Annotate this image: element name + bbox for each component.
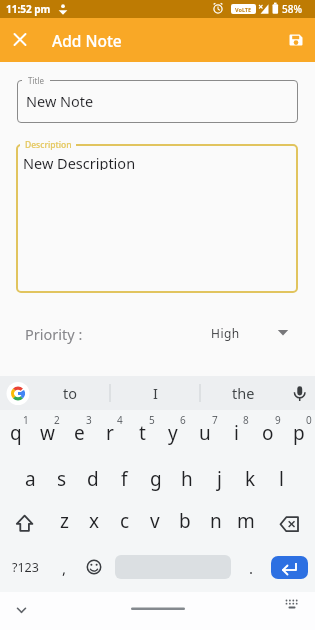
button[interactable]: n [201, 508, 231, 534]
button[interactable]: m [231, 508, 261, 534]
staticText: g [150, 466, 162, 492]
staticText: n [210, 508, 222, 534]
staticText: v [150, 508, 160, 534]
button[interactable]: t [127, 420, 157, 446]
button[interactable] [10, 510, 40, 538]
button[interactable]: u [190, 420, 220, 446]
staticText: 2 [54, 413, 60, 426]
button[interactable]: , [52, 555, 76, 581]
button[interactable]: s [47, 466, 77, 492]
staticText: VoLTE [235, 6, 252, 13]
button[interactable]: I [131, 380, 179, 406]
staticText: 58% [282, 2, 302, 16]
button[interactable]: g [141, 466, 171, 492]
staticText: o [262, 420, 274, 446]
button[interactable]: k [235, 466, 265, 492]
button[interactable]: c [110, 508, 140, 534]
button[interactable]: ?123 [10, 554, 40, 580]
button[interactable]: l [266, 466, 296, 492]
button[interactable]: f [109, 466, 139, 492]
staticText: , [62, 558, 67, 578]
staticText: 9 [275, 413, 281, 426]
staticText: q [10, 420, 22, 446]
staticText: New Note [26, 91, 94, 108]
button[interactable] [271, 556, 308, 579]
button[interactable]: y [158, 420, 188, 446]
staticText: p [293, 420, 305, 446]
staticText: Description [25, 139, 72, 150]
button[interactable]: e [64, 420, 94, 446]
button[interactable]: p [284, 420, 314, 446]
button[interactable]: a [15, 466, 45, 492]
button[interactable]: b [170, 508, 200, 534]
staticText: to [63, 383, 78, 403]
button[interactable]: q [1, 420, 31, 446]
staticText: d [87, 466, 99, 492]
button[interactable]: d [78, 466, 108, 492]
staticText: s [57, 466, 67, 492]
button[interactable]: the [219, 380, 267, 406]
button[interactable] [276, 510, 306, 538]
staticText: u [199, 420, 211, 446]
staticText: High [211, 325, 240, 341]
button[interactable] [16, 144, 298, 293]
staticText: x [89, 508, 100, 534]
staticText: ?123 [12, 559, 39, 576]
staticText: a [25, 466, 36, 492]
button[interactable] [280, 24, 312, 56]
staticText: 8 [243, 413, 249, 426]
button[interactable] [4, 24, 36, 56]
staticText: New Description [23, 153, 136, 170]
staticText: r [106, 420, 114, 446]
button[interactable] [17, 80, 298, 123]
staticText: j [217, 466, 222, 492]
staticText: m [237, 508, 255, 534]
button[interactable]: to [46, 380, 94, 406]
staticText: Title [28, 75, 44, 86]
staticText: 6 [180, 413, 186, 426]
staticText: 0 [306, 413, 312, 426]
staticText: b [179, 508, 191, 534]
button[interactable]: j [204, 466, 234, 492]
button[interactable]: z [49, 508, 79, 534]
staticText: h [181, 466, 193, 492]
staticText: l [279, 466, 284, 492]
staticText: 5 [149, 413, 155, 426]
staticText: e [74, 420, 85, 446]
staticText: the [232, 383, 255, 403]
staticText: . [249, 558, 254, 578]
button[interactable]: w [32, 420, 62, 446]
staticText: c [120, 508, 130, 534]
staticText: f [121, 466, 128, 492]
button[interactable]: r [95, 420, 125, 446]
staticText: i [234, 420, 239, 446]
staticText: 7 [212, 413, 218, 426]
button[interactable]: v [140, 508, 170, 534]
button[interactable] [4, 380, 32, 406]
staticText: k [245, 466, 256, 492]
button[interactable] [10, 600, 34, 622]
button[interactable] [286, 380, 312, 406]
button[interactable] [192, 320, 297, 347]
button[interactable]: i [221, 420, 251, 446]
staticText: t [139, 420, 146, 446]
staticText: Add Note [52, 30, 122, 51]
staticText: Priority : [25, 324, 83, 344]
button[interactable]: h [172, 466, 202, 492]
staticText: 11:52 pm [6, 2, 51, 16]
staticText: 3 [86, 413, 92, 426]
staticText: z [60, 508, 69, 534]
staticText: 4 [117, 413, 123, 426]
staticText: y [168, 420, 178, 446]
button[interactable] [280, 594, 304, 616]
button[interactable] [82, 554, 106, 580]
staticText: I [153, 383, 158, 403]
button[interactable]: x [79, 508, 109, 534]
button[interactable]: o [253, 420, 283, 446]
staticText: 1 [23, 413, 29, 426]
staticText: w [40, 420, 55, 446]
button[interactable]: . [239, 555, 263, 581]
